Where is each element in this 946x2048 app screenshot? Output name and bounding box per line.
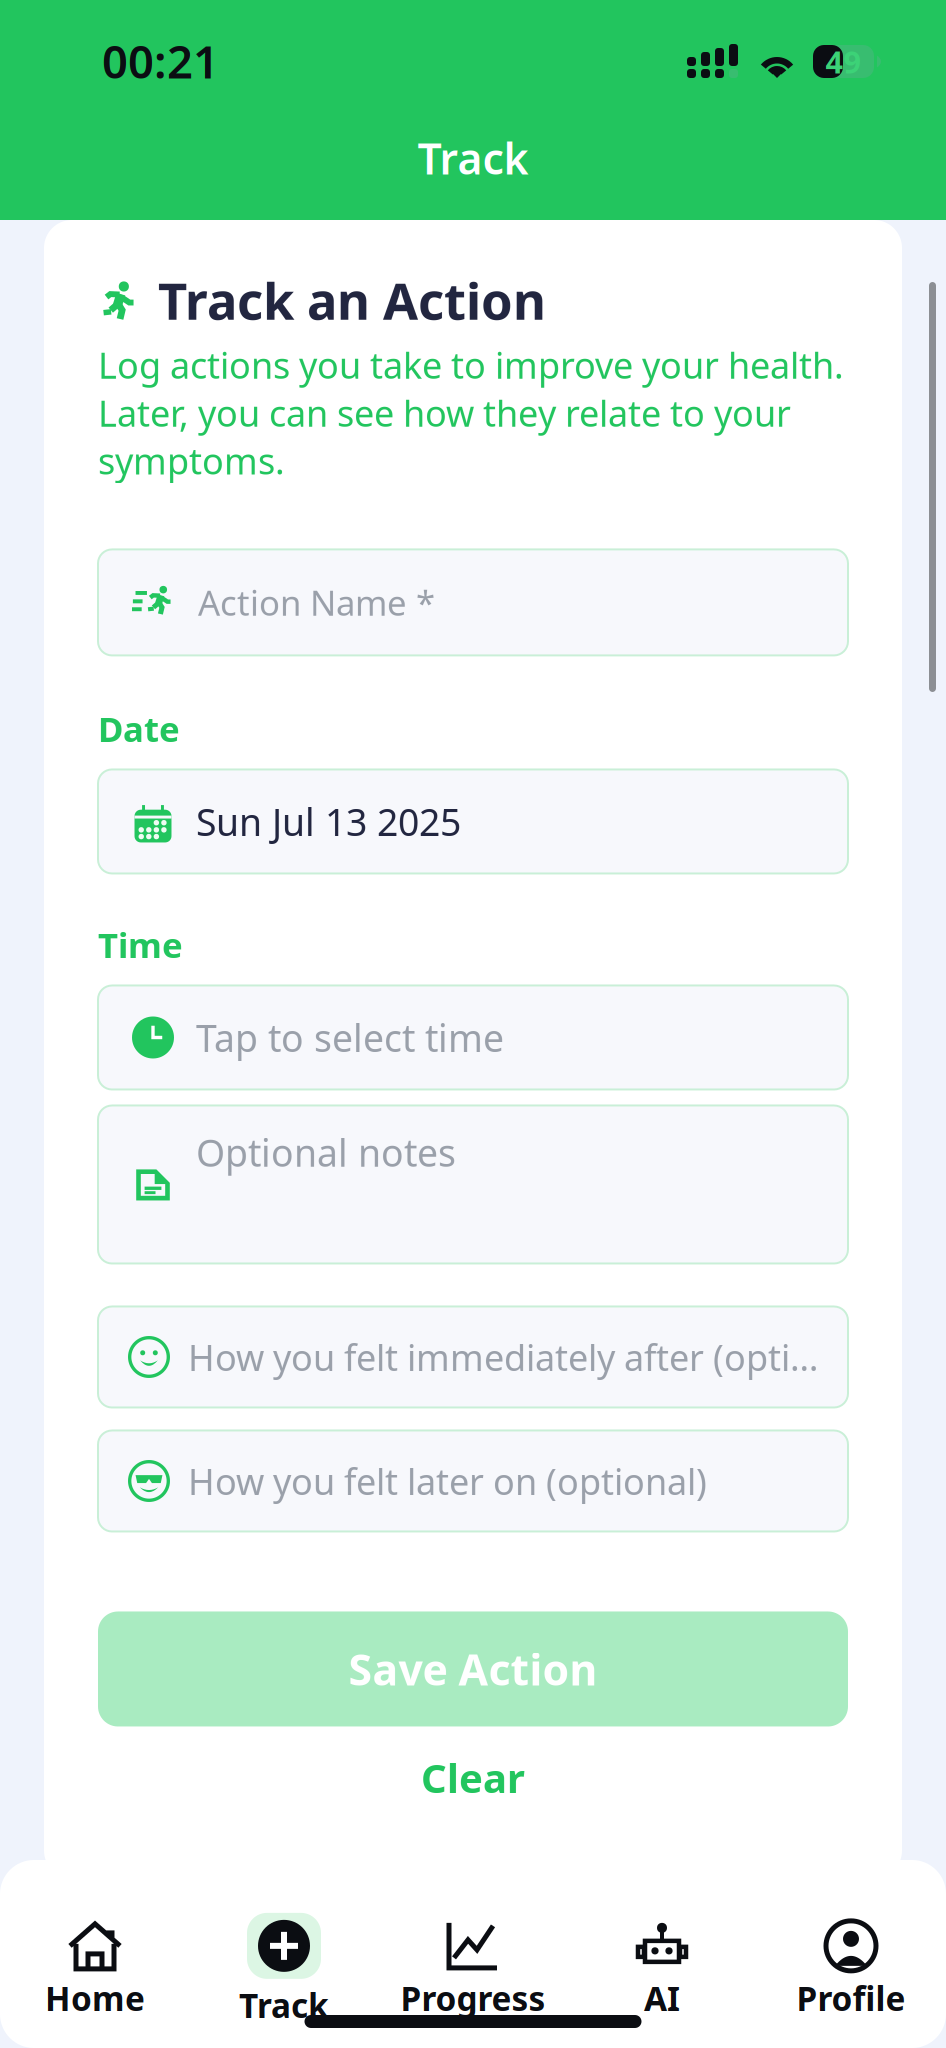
staticText: Sun Jul 13 2025	[196, 797, 461, 846]
button[interactable]: Sun Jul 13 2025	[98, 769, 848, 873]
staticText: Track an Action	[158, 266, 546, 334]
staticText: Profile	[796, 1976, 905, 2020]
staticText: Action Name *	[198, 579, 435, 625]
button[interactable]: Action Name *	[98, 549, 848, 655]
button[interactable]: Track	[189, 1910, 378, 2030]
staticText: How you felt immediately after (opti…	[188, 1333, 818, 1381]
staticText: Save Action	[348, 1641, 597, 1697]
staticText: 49	[825, 41, 861, 82]
button[interactable]: How you felt later on (optional)	[98, 1430, 848, 1531]
staticText: How you felt later on (optional)	[188, 1457, 707, 1505]
button[interactable]: How you felt immediately after (opti…	[98, 1306, 848, 1407]
button[interactable]: AI	[567, 1910, 756, 2030]
staticText: 00:21	[102, 31, 219, 91]
button[interactable]: Save Action	[98, 1611, 848, 1726]
staticText: Progress	[400, 1976, 545, 2020]
staticText: Home	[45, 1976, 145, 2020]
staticText: Tap to select time	[196, 1013, 504, 1062]
staticText: Clear	[421, 1751, 525, 1804]
button[interactable]: Optional notes	[98, 1105, 848, 1263]
staticText: Optional notes	[196, 1127, 456, 1177]
staticText: Log actions you take to improve your hea…	[98, 341, 844, 484]
staticText: Track	[239, 1983, 329, 2027]
staticText: Track	[417, 130, 528, 186]
button[interactable]: Tap to select time	[98, 985, 848, 1089]
staticText: AI	[644, 1976, 680, 2020]
staticText: Date	[98, 705, 180, 751]
staticText: Time	[98, 921, 183, 967]
button[interactable]: Progress	[378, 1910, 567, 2030]
button[interactable]: Clear	[98, 1748, 848, 1806]
button[interactable]: Profile	[756, 1910, 945, 2030]
button[interactable]: Home	[0, 1910, 189, 2030]
